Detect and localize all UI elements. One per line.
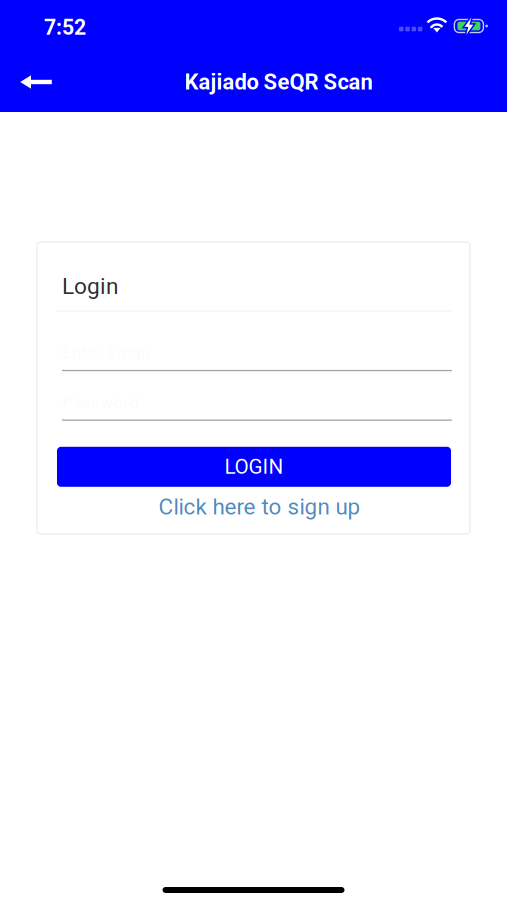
staticText: Login xyxy=(62,273,119,300)
staticText: 7:52 xyxy=(44,15,86,40)
staticText: Kajiado SeQR Scan xyxy=(184,69,372,95)
button[interactable]: Back xyxy=(0,52,62,112)
button[interactable]: LOGIN xyxy=(57,447,451,487)
staticText: Click here to sign up xyxy=(158,494,360,520)
staticText: LOGIN xyxy=(224,455,283,479)
button[interactable]: Click here to sign up xyxy=(37,494,470,520)
